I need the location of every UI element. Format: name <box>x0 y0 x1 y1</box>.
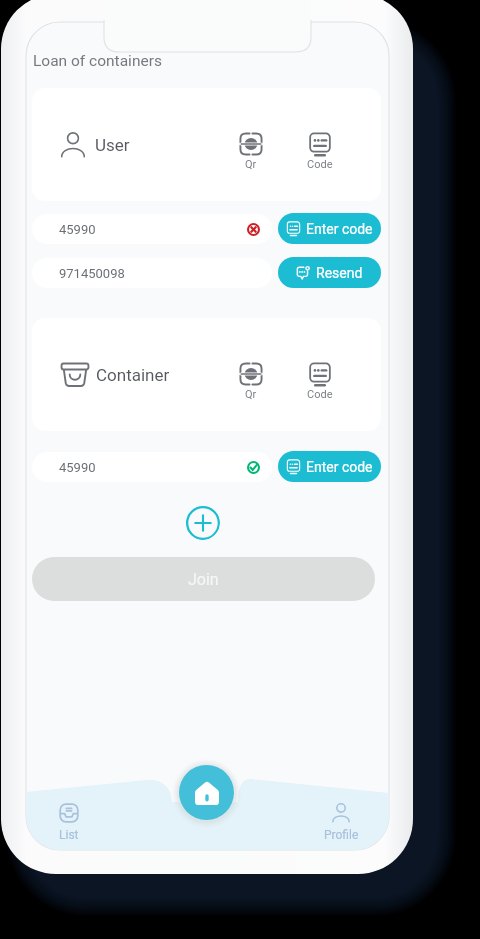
staticText: Code <box>307 388 333 401</box>
button[interactable]: Code <box>301 132 338 171</box>
button[interactable]: 45990 <box>32 214 272 244</box>
staticText: Resend <box>316 265 363 281</box>
staticText: 45990 <box>59 222 96 237</box>
button[interactable]: Enter code <box>278 213 381 244</box>
staticText: Container <box>96 365 170 385</box>
staticText: List <box>59 828 79 842</box>
staticText: Code <box>307 158 333 171</box>
button[interactable]: Enter code <box>278 451 381 482</box>
staticText: 45990 <box>59 460 96 475</box>
button[interactable]: Code <box>301 362 338 401</box>
button[interactable]: Container <box>32 318 381 431</box>
staticText: 971450098 <box>59 266 125 281</box>
staticText: Enter code <box>306 459 373 475</box>
button[interactable]: Home <box>179 765 234 820</box>
staticText: Join <box>188 570 219 589</box>
button[interactable]: Qr <box>232 362 269 401</box>
button[interactable]: Join <box>32 557 375 601</box>
button[interactable]: Qr <box>232 132 269 171</box>
button[interactable]: Add <box>185 505 220 540</box>
button[interactable]: Resend <box>278 257 381 288</box>
button[interactable]: 45990 <box>32 452 272 482</box>
staticText: User <box>95 135 130 155</box>
staticText: Loan of containers <box>33 52 162 70</box>
staticText: Profile <box>324 828 359 842</box>
staticText: Qr <box>245 158 257 171</box>
button[interactable]: Profile <box>320 802 362 842</box>
button[interactable]: 971450098 <box>32 258 272 288</box>
button[interactable]: User <box>32 88 381 201</box>
staticText: Qr <box>245 388 257 401</box>
staticText: Enter code <box>306 221 373 237</box>
button[interactable]: List <box>48 802 89 842</box>
